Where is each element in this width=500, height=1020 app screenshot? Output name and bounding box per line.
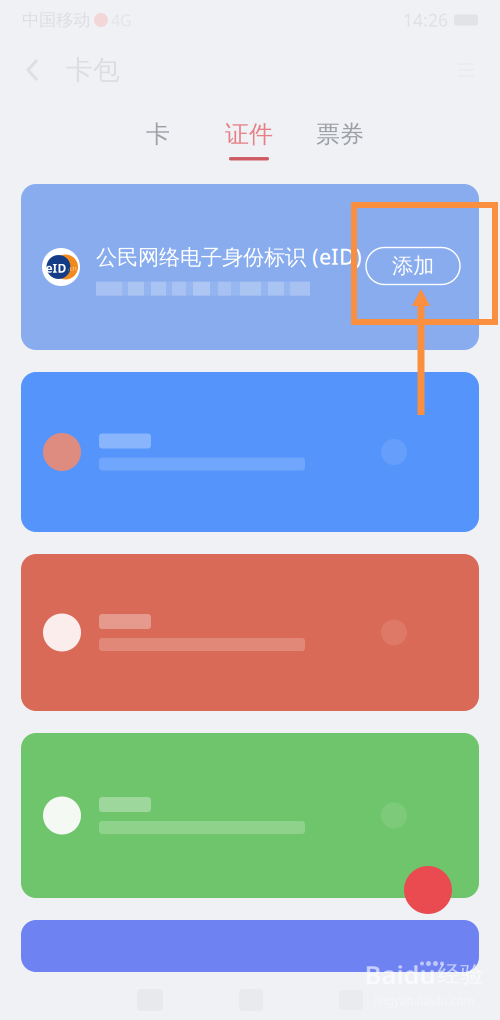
button[interactable] bbox=[21, 733, 479, 898]
button[interactable]: 添加 bbox=[366, 247, 460, 284]
button[interactable]: 证件 bbox=[225, 120, 273, 160]
staticText: 票券 bbox=[316, 120, 364, 149]
staticText: Baidu bbox=[364, 958, 435, 991]
button[interactable]: 返回 bbox=[22, 52, 48, 88]
staticText: 14:26 bbox=[403, 8, 448, 31]
staticText: .cn bbox=[67, 264, 76, 272]
staticText: 公民网络电子身份标识 (eID) bbox=[96, 242, 362, 271]
staticText: 证件 bbox=[225, 120, 273, 149]
staticText: 4G bbox=[111, 9, 132, 31]
staticText: 中国移动 bbox=[22, 9, 90, 31]
staticText: eID bbox=[45, 260, 66, 276]
button[interactable]: 卡包 bbox=[48, 54, 120, 86]
button[interactable] bbox=[21, 554, 479, 711]
staticText: 卡 bbox=[146, 120, 170, 149]
button[interactable] bbox=[21, 372, 479, 532]
staticText: 添加 bbox=[392, 253, 434, 279]
staticText: 经验 bbox=[437, 961, 483, 988]
button[interactable]: 卡 bbox=[138, 120, 178, 160]
staticText: 卡包 bbox=[66, 54, 120, 86]
button[interactable]: 票券 bbox=[316, 120, 364, 160]
